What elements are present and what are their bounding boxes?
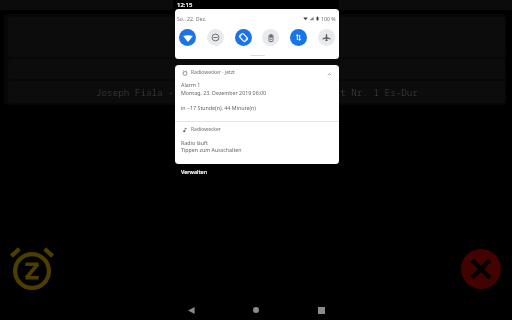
button[interactable]: Do not disturb <box>207 29 224 46</box>
button[interactable]: Airplane mode <box>318 29 335 46</box>
staticText: Joseph Fiala - Divertimento für Oboenqua… <box>96 86 418 99</box>
button[interactable]: Dismiss alarm <box>461 249 501 289</box>
staticText: 12:15 <box>177 1 193 9</box>
staticText: Montag, 23. Dezember 2019 06:00 <box>181 89 267 96</box>
staticText: 100 % <box>321 15 336 22</box>
button[interactable]: Back <box>181 300 201 320</box>
staticText: Radiowecker <box>191 126 221 133</box>
button[interactable]: Verwalten <box>180 167 209 176</box>
staticText: Verwalten <box>181 168 208 175</box>
staticText: Tippen zum Ausschalten <box>181 146 242 153</box>
button[interactable]: Snooze <box>6 245 58 297</box>
staticText: Alarm 1 <box>181 81 201 88</box>
staticText: Radio läuft <box>181 139 208 146</box>
staticText: Radiowecker · jetzt <box>191 69 235 76</box>
button[interactable]: Home <box>246 300 266 320</box>
button[interactable]: Recent apps <box>311 300 331 320</box>
button[interactable]: Collapse notification <box>327 72 332 77</box>
staticText: in ~17 Stunde(n), 44 Minute(n) <box>181 104 256 111</box>
button[interactable]: Wi-Fi <box>179 29 196 46</box>
button[interactable]: Battery saver <box>262 29 279 46</box>
staticText: So., 22. Dez. <box>177 15 207 22</box>
button[interactable]: Auto-rotate <box>235 29 252 46</box>
button[interactable]: Mobile data <box>290 29 307 46</box>
